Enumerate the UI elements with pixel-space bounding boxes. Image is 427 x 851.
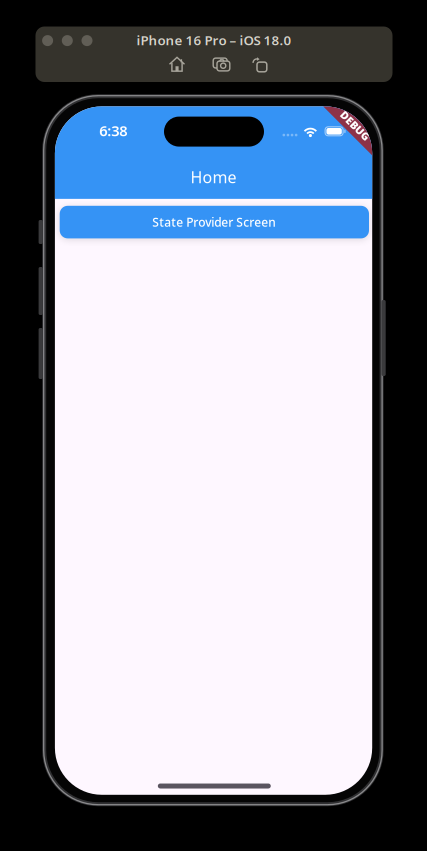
staticText: State Provider Screen xyxy=(152,214,276,230)
button[interactable]: Rotate xyxy=(246,53,274,75)
button[interactable]: Home xyxy=(163,53,191,75)
staticText: iPhone 16 Pro – iOS 18.0 xyxy=(136,31,291,49)
staticText: DEBUG xyxy=(337,119,374,133)
staticText: Home xyxy=(191,166,237,188)
button[interactable]: Screenshot xyxy=(207,53,235,75)
staticText: 6:38 xyxy=(99,121,127,140)
button[interactable]: State Provider Screen xyxy=(60,206,369,238)
